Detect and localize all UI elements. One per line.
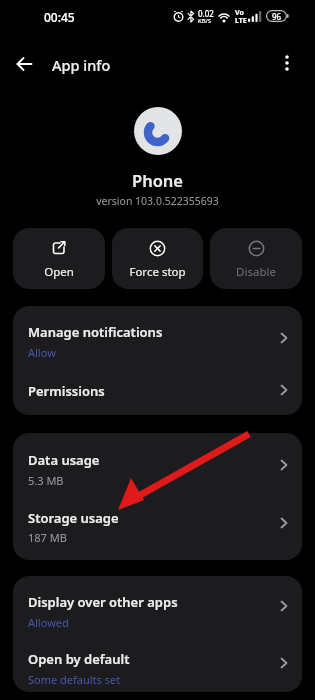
staticText: Open by default <box>28 650 130 668</box>
staticText: Storage usage <box>28 509 119 527</box>
staticText: version 103.0.522355693 <box>0 194 315 208</box>
button[interactable] <box>269 45 305 81</box>
button[interactable] <box>13 634 302 692</box>
staticText: Allow <box>28 345 56 360</box>
staticText: Data usage <box>28 451 100 469</box>
staticText: Disable <box>210 264 302 280</box>
staticText: Manage notifications <box>28 323 163 341</box>
button[interactable] <box>13 370 302 415</box>
staticText: Some defaults set <box>28 672 121 687</box>
button[interactable]: Disable <box>210 228 302 289</box>
staticText: LTE <box>235 16 247 26</box>
staticText: 187 MB <box>28 530 67 545</box>
staticText: Open <box>13 264 105 280</box>
staticText: App info <box>52 55 111 75</box>
staticText: 96 <box>272 11 282 22</box>
staticText: Allowed <box>28 615 69 630</box>
button[interactable] <box>13 306 302 370</box>
button[interactable]: Force stop <box>112 228 203 289</box>
button[interactable] <box>6 46 42 82</box>
staticText: KB/S <box>198 17 212 25</box>
button[interactable] <box>13 576 302 634</box>
button[interactable] <box>13 433 302 497</box>
staticText: Display over other apps <box>28 593 178 611</box>
staticText: Force stop <box>112 264 203 280</box>
staticText: Vo <box>235 8 244 18</box>
staticText: Phone <box>0 169 315 191</box>
button[interactable] <box>13 497 302 560</box>
staticText: 00:45 <box>44 9 75 25</box>
staticText: 0.02 <box>198 8 214 19</box>
staticText: Permissions <box>28 382 105 400</box>
staticText: 5.3 MB <box>28 473 64 488</box>
button[interactable]: Open <box>13 228 105 289</box>
